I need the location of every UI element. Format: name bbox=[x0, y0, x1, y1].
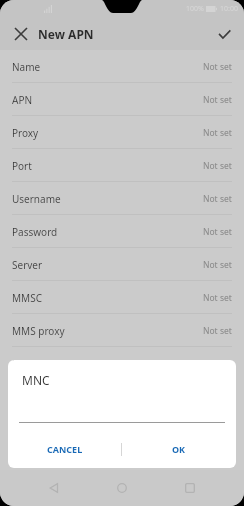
staticText: Name bbox=[12, 60, 41, 74]
staticText: Not set bbox=[203, 193, 232, 205]
button[interactable]: Close bbox=[8, 21, 34, 47]
staticText: Not set bbox=[203, 160, 232, 172]
staticText: CANCEL bbox=[47, 443, 83, 455]
button[interactable]: MCC bbox=[0, 380, 244, 413]
button[interactable]: Back bbox=[40, 474, 68, 502]
staticText: Not set bbox=[203, 94, 232, 106]
staticText: Not set bbox=[203, 358, 232, 370]
staticText: Not set bbox=[203, 325, 232, 337]
button[interactable]: OK bbox=[122, 436, 236, 462]
button[interactable]: Name bbox=[0, 50, 244, 83]
button[interactable]: CANCEL bbox=[8, 436, 121, 462]
staticText: Server bbox=[12, 258, 43, 272]
staticText: New APN bbox=[38, 26, 94, 42]
staticText: 100% bbox=[186, 4, 204, 14]
staticText: MNC bbox=[22, 372, 50, 388]
button[interactable]: Username bbox=[0, 182, 244, 215]
staticText: MMS proxy bbox=[12, 324, 65, 338]
staticText: Password bbox=[12, 225, 58, 239]
button[interactable]: MNC bbox=[0, 413, 244, 446]
staticText: MMSC bbox=[12, 291, 42, 305]
button[interactable]: Recents bbox=[176, 474, 204, 502]
staticText: Proxy bbox=[12, 126, 39, 140]
button[interactable]: Home bbox=[108, 474, 136, 502]
button[interactable]: MMS port bbox=[0, 347, 244, 380]
staticText: MMS port bbox=[12, 357, 59, 371]
staticText: Not set bbox=[203, 127, 232, 139]
staticText: Not set bbox=[203, 61, 232, 73]
button[interactable]: Save bbox=[211, 21, 237, 47]
button[interactable]: Password bbox=[0, 215, 244, 248]
staticText: Username bbox=[12, 192, 61, 206]
staticText: 10:00 bbox=[220, 4, 238, 14]
staticText: Port bbox=[12, 159, 32, 173]
staticText: Not set bbox=[203, 226, 232, 238]
staticText: Not set bbox=[203, 259, 232, 271]
button[interactable]: APN bbox=[0, 83, 244, 116]
staticText: APN bbox=[12, 93, 33, 107]
button[interactable]: MMSC bbox=[0, 281, 244, 314]
button[interactable]: Proxy bbox=[0, 116, 244, 149]
staticText: Not set bbox=[203, 292, 232, 304]
staticText: OK bbox=[172, 443, 186, 455]
button[interactable]: Server bbox=[0, 248, 244, 281]
button[interactable]: Port bbox=[0, 149, 244, 182]
button[interactable]: MMS proxy bbox=[0, 314, 244, 347]
